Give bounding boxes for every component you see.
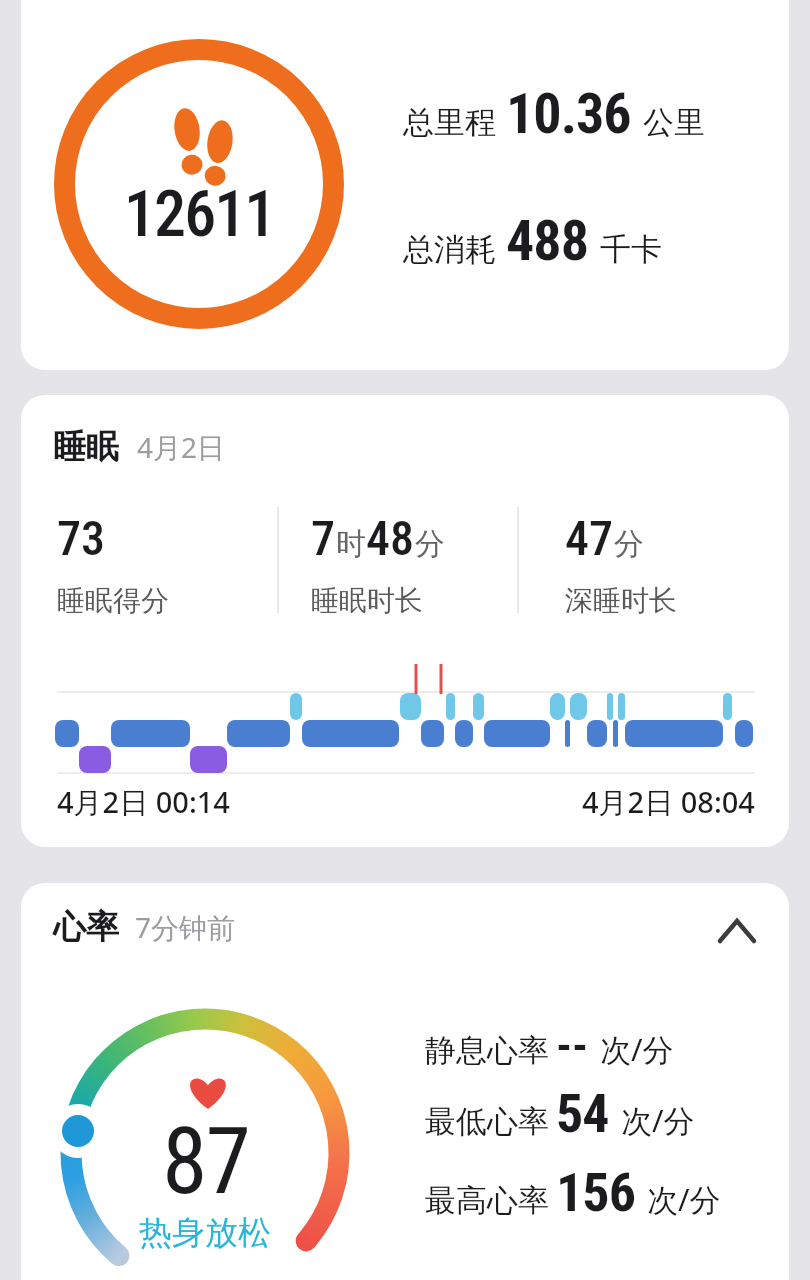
staticText: 最低心率 — [425, 1102, 549, 1141]
staticText: 静息心率 — [425, 1031, 549, 1070]
staticText: 分 — [614, 525, 644, 563]
staticText: 睡眠得分 — [57, 583, 169, 618]
staticText: 7 — [311, 510, 336, 566]
staticText: 47 — [565, 510, 614, 566]
staticText: 最高心率 — [425, 1181, 549, 1220]
staticText: 次/分 — [647, 1178, 721, 1220]
staticText: 4月2日 — [137, 428, 226, 466]
staticText: 次/分 — [621, 1099, 695, 1141]
staticText: 488 — [506, 208, 588, 274]
button[interactable] — [21, 0, 789, 370]
staticText: 73 — [57, 510, 106, 566]
staticText: -- — [556, 1020, 588, 1072]
staticText: 87 — [162, 1108, 249, 1214]
staticText: 10.36 — [506, 81, 631, 147]
staticText: 公里 — [643, 103, 705, 142]
staticText: 4月2日 08:04 — [582, 782, 755, 822]
staticText: 156 — [556, 1161, 635, 1224]
staticText: 分 — [415, 525, 445, 563]
staticText: 睡眠时长 — [311, 583, 423, 618]
staticText: 心率 — [53, 906, 119, 948]
staticText: 7分钟前 — [135, 908, 236, 946]
staticText: 深睡时长 — [565, 583, 677, 618]
staticText: 48 — [366, 510, 415, 566]
staticText: 睡眠 — [53, 426, 119, 468]
staticText: 次/分 — [600, 1028, 674, 1070]
staticText: 热身放松 — [139, 1212, 271, 1254]
staticText: 总消耗 — [403, 230, 496, 269]
button[interactable] — [21, 883, 789, 1280]
staticText: 时 — [336, 525, 366, 563]
staticText: 54 — [556, 1082, 609, 1145]
staticText: 12611 — [124, 177, 275, 239]
staticText: 总里程 — [403, 103, 496, 142]
staticText: 千卡 — [600, 230, 662, 269]
staticText: 4月2日 00:14 — [57, 782, 230, 822]
button[interactable] — [21, 395, 789, 847]
